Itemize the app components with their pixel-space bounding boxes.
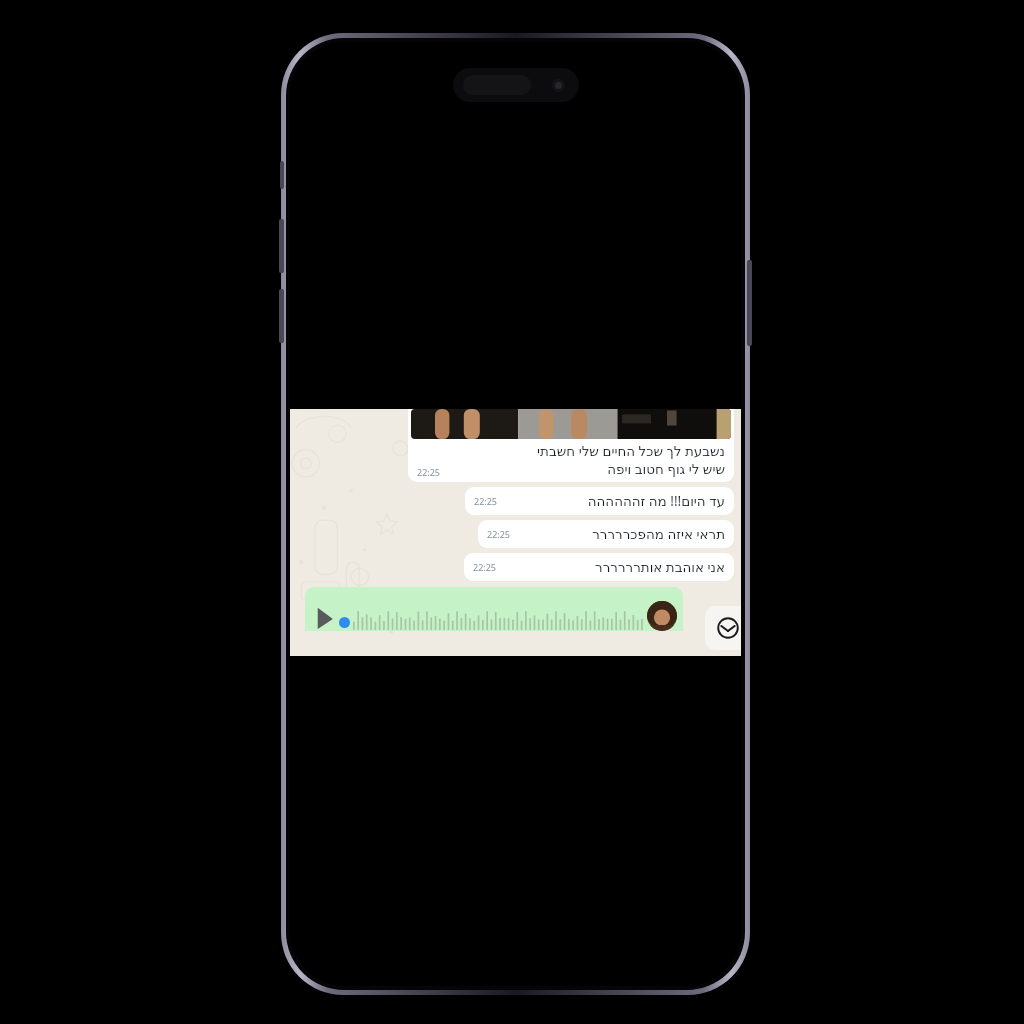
button[interactable]: Scroll to bottom [705,606,741,650]
staticText: אני אוהבת אותרררררר [595,558,725,576]
button[interactable]: 22:25 [408,409,734,482]
staticText: עד היום!!! מה זהההההה [587,492,725,510]
staticText: תראי איזה מהפכררררר [592,525,725,543]
staticText: 22:25 [487,528,511,540]
staticText: 22:25 [474,495,498,507]
staticText: 22:25 [473,561,497,573]
staticText: נשבעת לך שכל החיים שלי חשבתי שיש לי גוף … [537,442,725,478]
button[interactable]: 22:25 [465,487,734,515]
button[interactable]: Play voice message [305,587,683,631]
button[interactable]: 22:25 [464,553,734,581]
staticText: 22:25 [417,466,441,478]
button[interactable]: Play voice message [311,603,337,629]
button[interactable]: 22:25 [478,520,734,548]
